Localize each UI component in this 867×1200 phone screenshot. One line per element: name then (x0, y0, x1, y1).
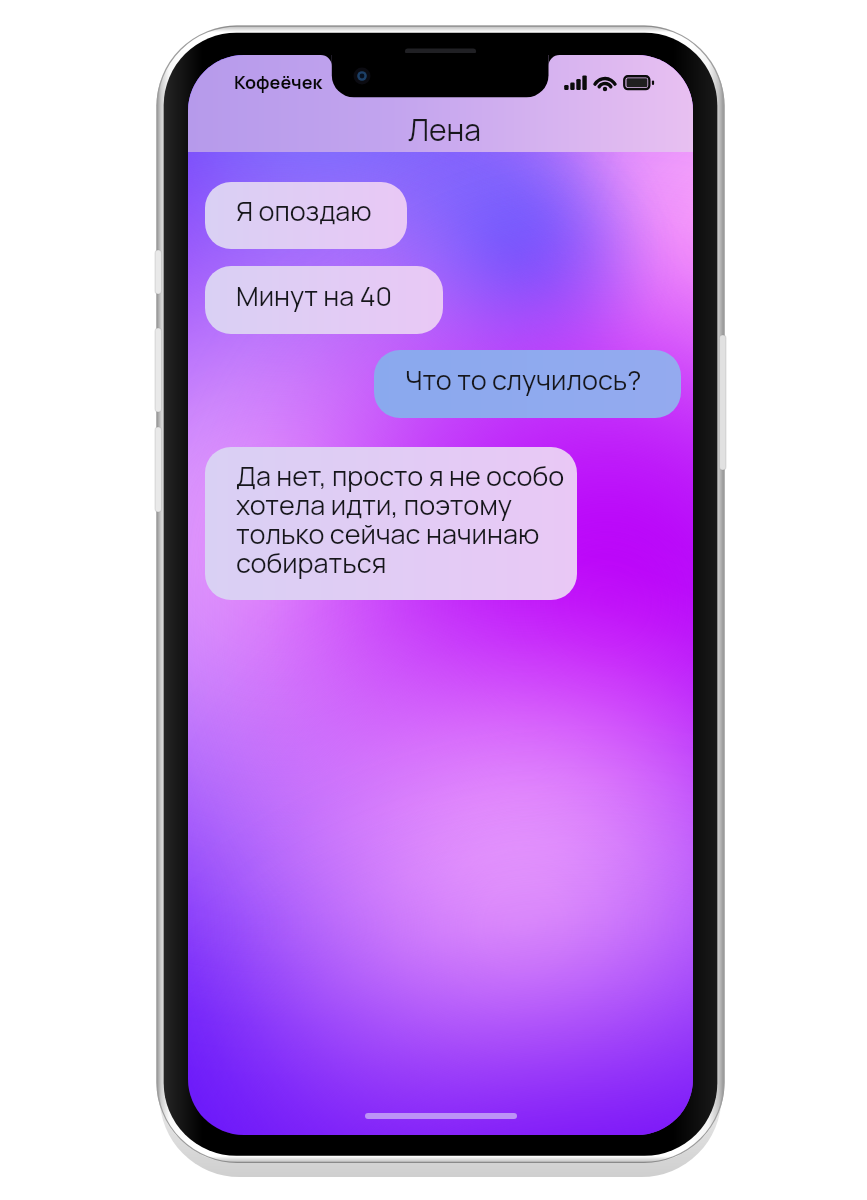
staticText: Минут на 40 (236, 277, 393, 314)
other: Signal, Wi-Fi and battery status (562, 72, 658, 92)
button[interactable]: Что то случилось? (374, 350, 681, 418)
staticText: Я опоздаю (236, 192, 372, 229)
button[interactable]: Минут на 40 (205, 266, 443, 334)
staticText: Кофеёчек (234, 70, 323, 95)
staticText: Да нет, просто я не особо хотела идти, п… (236, 457, 567, 581)
staticText: Что то случилось? (405, 361, 642, 398)
staticText: Лена (408, 109, 481, 150)
button[interactable]: Я опоздаю (205, 182, 407, 249)
button[interactable]: Да нет, просто я не особо хотела идти, п… (205, 447, 577, 600)
